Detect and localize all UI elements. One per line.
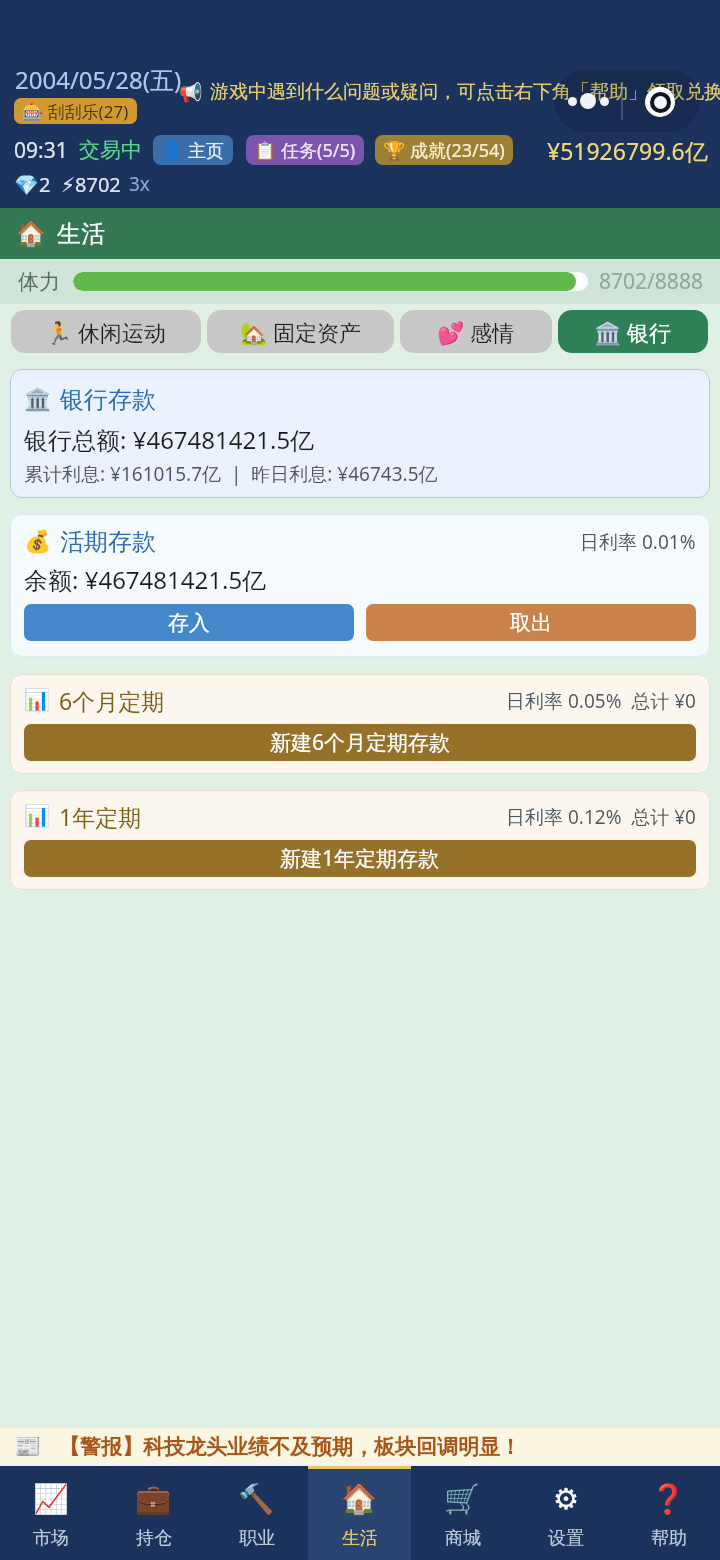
staticText: 存入: [168, 610, 210, 636]
staticText: 🏛️ 银行: [594, 317, 672, 347]
staticText: 市场: [33, 1527, 69, 1550]
staticText: 🔨: [238, 1482, 275, 1516]
staticText: 日利率 0.01%: [580, 529, 696, 555]
staticText: 新建1年定期存款: [280, 844, 440, 873]
staticText: 🏃 休闲运动: [45, 317, 167, 347]
staticText: 🏡 固定资产: [240, 317, 362, 347]
staticText: 日利率 0.12% 总计 ¥0: [506, 804, 696, 830]
button[interactable]: 🏠: [308, 1466, 411, 1560]
button[interactable]: 📰: [0, 1434, 720, 1460]
staticText: ⚙️: [553, 1482, 579, 1516]
staticText: 📊: [24, 688, 51, 713]
staticText: 💼: [135, 1482, 172, 1516]
button[interactable]: 存入: [24, 604, 354, 641]
staticText: 6个月定期: [59, 685, 165, 716]
staticText: 体力: [18, 269, 60, 295]
staticText: 📋 任务(5/5): [254, 138, 356, 163]
button[interactable]: 👤 主页: [153, 135, 233, 165]
staticText: 设置: [548, 1527, 584, 1550]
staticText: 累计利息: ¥161015.7亿 | 昨日利息: ¥46743.5亿: [24, 461, 438, 487]
staticText: 09:31: [14, 136, 68, 165]
button[interactable]: ⚙️: [514, 1466, 617, 1560]
staticText: 💰: [24, 529, 52, 555]
staticText: ¥51926799.6亿: [547, 135, 708, 165]
staticText: 🏆 成就(23/54): [383, 138, 505, 163]
staticText: 持仓: [136, 1527, 172, 1550]
button[interactable]: 💼: [102, 1466, 205, 1560]
staticText: 📈: [33, 1482, 70, 1516]
button[interactable]: 📋 任务(5/5): [246, 135, 364, 165]
button[interactable]: 🔨: [205, 1466, 308, 1560]
staticText: 【警报】科技龙头业绩不及预期，板块回调明显！: [59, 1434, 521, 1460]
staticText: 新建6个月定期存款: [270, 728, 451, 757]
button[interactable]: 🏠: [16, 219, 105, 249]
button[interactable]: 🏡 固定资产: [207, 310, 394, 353]
staticText: 3x: [129, 171, 150, 197]
button[interactable]: 新建1年定期存款: [24, 840, 696, 877]
staticText: 👤 主页: [161, 138, 225, 163]
staticText: 💕 感情: [437, 317, 515, 347]
staticText: 余额: ¥467481421.5亿: [24, 563, 267, 596]
staticText: ❓: [650, 1482, 687, 1516]
button[interactable]: 🏛️: [10, 369, 710, 498]
staticText: 🏠: [341, 1482, 378, 1516]
staticText: 交易中: [79, 137, 142, 163]
staticText: 生活: [57, 219, 105, 249]
staticText: 🛒: [444, 1482, 481, 1516]
staticText: 帮助: [651, 1527, 687, 1550]
staticText: 📰: [14, 1434, 42, 1460]
button[interactable]: ❓: [617, 1466, 720, 1560]
staticText: 活期存款: [60, 527, 156, 557]
staticText: ⚡8702: [61, 171, 121, 198]
staticText: 💎2: [14, 171, 51, 198]
staticText: 银行总额: ¥467481421.5亿: [24, 423, 315, 456]
button[interactable]: 新建6个月定期存款: [24, 724, 696, 761]
button[interactable]: 🛒: [411, 1466, 514, 1560]
button[interactable]: 🏆 成就(23/54): [375, 135, 513, 165]
button[interactable]: 取出: [366, 604, 696, 641]
staticText: 2004/05/28(五): [15, 63, 182, 93]
staticText: 8702/8888: [599, 267, 703, 296]
button[interactable]: 📈: [0, 1466, 102, 1560]
staticText: 取出: [510, 610, 552, 636]
staticText: 1年定期: [59, 801, 142, 832]
staticText: 生活: [342, 1527, 378, 1550]
staticText: 游戏中遇到什么问题或疑问，可点击右下角「帮助」领取兑换: [210, 80, 720, 104]
staticText: 🏠: [16, 220, 46, 248]
staticText: 日利率 0.05% 总计 ¥0: [506, 688, 696, 714]
staticText: 📢: [179, 81, 203, 103]
button[interactable]: 🎰 刮刮乐(27): [14, 98, 137, 124]
staticText: 🎰 刮刮乐(27): [22, 100, 129, 123]
staticText: 📊: [24, 804, 51, 829]
staticText: 银行存款: [60, 385, 156, 415]
button[interactable]: 🏃 休闲运动: [11, 310, 201, 353]
staticText: 商城: [445, 1527, 481, 1550]
button[interactable]: 💕 感情: [400, 310, 552, 353]
staticText: 职业: [239, 1527, 275, 1550]
button[interactable]: 🏛️ 银行: [558, 310, 708, 353]
staticText: 🏛️: [24, 387, 52, 413]
